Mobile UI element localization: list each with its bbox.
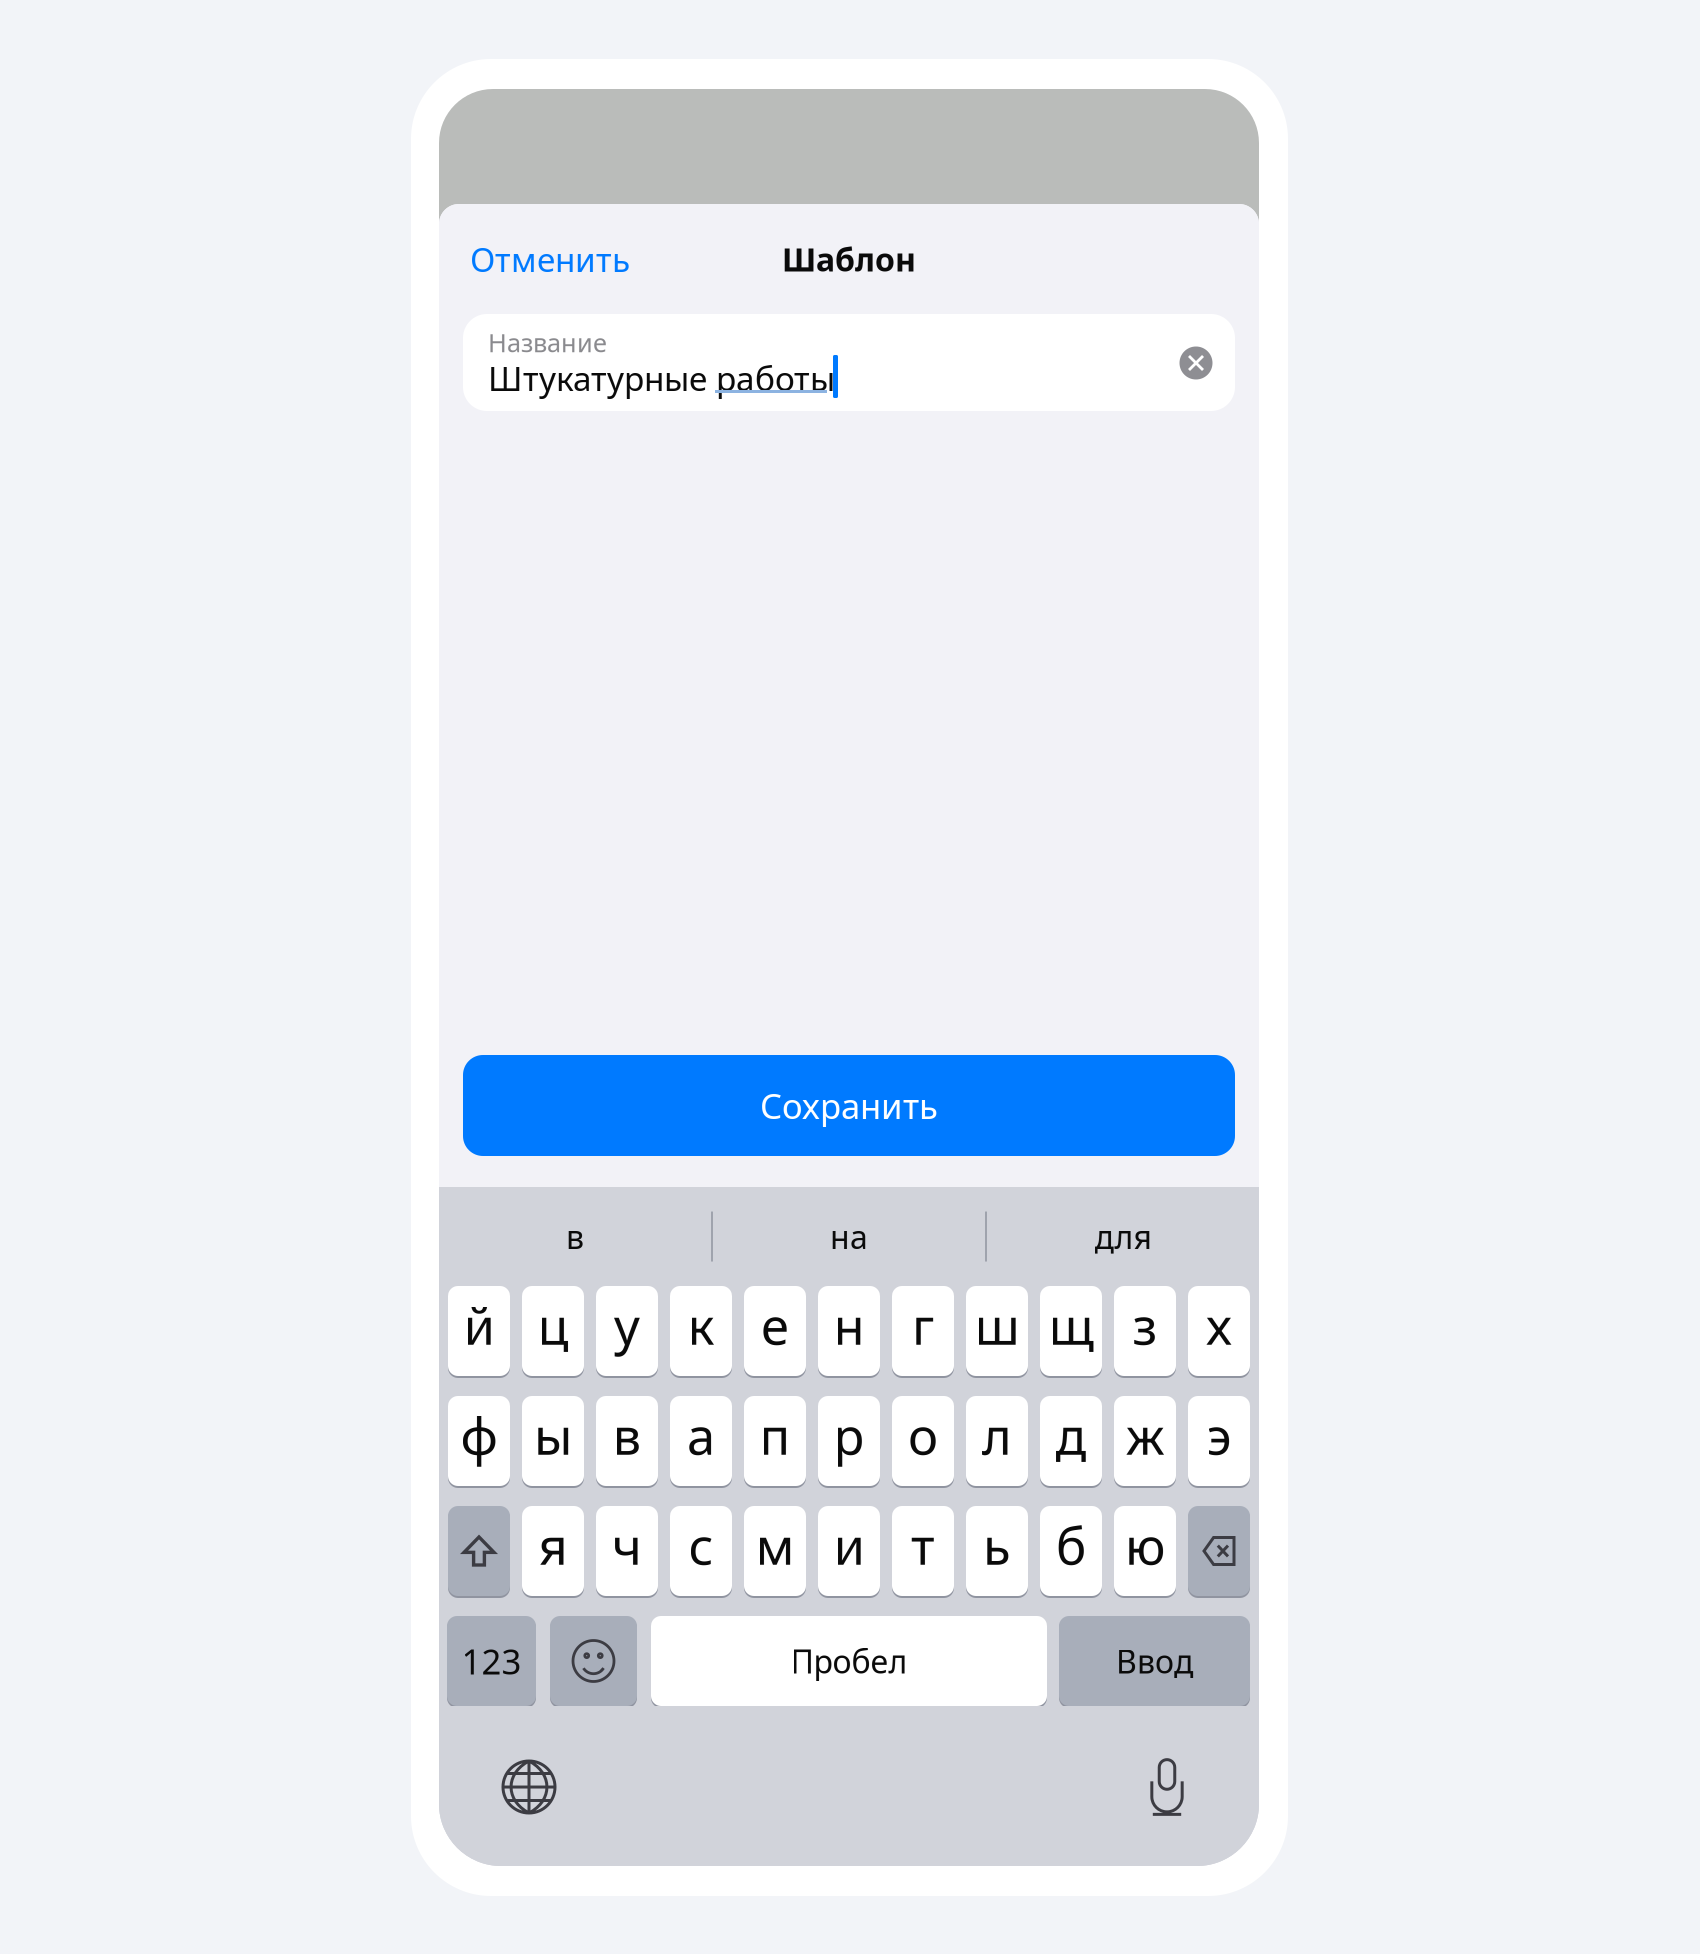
staticText: г [912,1291,934,1359]
staticText: к [687,1291,714,1359]
staticText: б [1056,1511,1086,1579]
button[interactable]: д [1040,1396,1102,1486]
staticText: о [908,1401,938,1469]
staticText: м [755,1511,794,1579]
button[interactable]: э [1188,1396,1250,1486]
staticText: ч [612,1511,642,1579]
button[interactable]: Пробел [651,1616,1047,1706]
staticText: х [1206,1291,1232,1359]
button[interactable]: ь [966,1506,1028,1596]
button[interactable]: б [1040,1506,1102,1596]
staticText: Штукатурные работы [488,356,835,400]
staticText: э [1206,1401,1231,1469]
button[interactable]: а [670,1396,732,1486]
staticText: л [982,1401,1012,1469]
staticText: Ввод [1116,1640,1193,1682]
button[interactable]: м [744,1506,806,1596]
button[interactable]: й [448,1286,510,1376]
staticText: ж [1126,1401,1164,1469]
staticText: у [614,1291,640,1359]
staticText: ш [974,1291,1019,1359]
button[interactable]: Верхний регистр [448,1506,510,1596]
staticText: и [833,1511,864,1579]
staticText: ы [534,1401,572,1469]
staticText: для [1094,1215,1151,1258]
button[interactable]: Удалить [1188,1506,1250,1596]
staticText: е [761,1291,789,1359]
button[interactable]: Отменить [439,228,670,290]
button[interactable]: щ [1040,1286,1102,1376]
staticText: 123 [461,1638,521,1684]
staticText: Сохранить [760,1082,938,1128]
button[interactable]: с [670,1506,732,1596]
button[interactable]: ж [1114,1396,1176,1486]
staticText: в [612,1401,641,1469]
button[interactable]: для [987,1187,1259,1286]
staticText: д [1055,1401,1086,1469]
button[interactable]: л [966,1396,1028,1486]
button[interactable]: к [670,1286,732,1376]
staticText: з [1132,1291,1157,1359]
button[interactable]: на [713,1187,985,1286]
button[interactable]: 123 [447,1616,536,1706]
button[interactable]: п [744,1396,806,1486]
button[interactable]: ц [522,1286,584,1376]
staticText: р [833,1401,864,1469]
staticText: с [688,1511,713,1579]
button[interactable]: Очистить текст [1163,330,1229,396]
button[interactable]: ф [448,1396,510,1486]
staticText: Отменить [470,237,630,281]
button[interactable]: Эмодзи [550,1616,637,1706]
staticText: т [911,1511,935,1579]
button[interactable]: г [892,1286,954,1376]
button[interactable]: ш [966,1286,1028,1376]
staticText: на [830,1215,868,1258]
staticText: Шаблон [782,238,916,280]
button[interactable]: е [744,1286,806,1376]
staticText: п [759,1401,790,1469]
button[interactable]: ы [522,1396,584,1486]
button[interactable]: Сменить язык ввода [477,1735,581,1839]
button[interactable]: з [1114,1286,1176,1376]
button[interactable]: Диктовка [1115,1735,1219,1839]
staticText: щ [1048,1291,1093,1359]
button[interactable]: ч [596,1506,658,1596]
button[interactable]: и [818,1506,880,1596]
button[interactable]: в [596,1396,658,1486]
staticText: ф [460,1401,497,1469]
staticText: Название [488,326,607,359]
staticText: ь [983,1511,1011,1579]
staticText: Пробел [790,1640,907,1682]
staticText: ц [537,1291,568,1359]
button[interactable]: у [596,1286,658,1376]
button[interactable]: о [892,1396,954,1486]
staticText: в [566,1215,584,1258]
button[interactable]: Сохранить [463,1055,1235,1156]
button[interactable]: Ввод [1059,1616,1250,1706]
staticText: н [833,1291,864,1359]
staticText: й [463,1291,494,1359]
button[interactable]: я [522,1506,584,1596]
button[interactable]: т [892,1506,954,1596]
button[interactable]: н [818,1286,880,1376]
staticText: ю [1125,1511,1165,1579]
button[interactable]: в [439,1187,711,1286]
button[interactable]: х [1188,1286,1250,1376]
button[interactable]: ю [1114,1506,1176,1596]
staticText: я [538,1511,567,1579]
button[interactable]: р [818,1396,880,1486]
staticText: а [687,1401,715,1469]
